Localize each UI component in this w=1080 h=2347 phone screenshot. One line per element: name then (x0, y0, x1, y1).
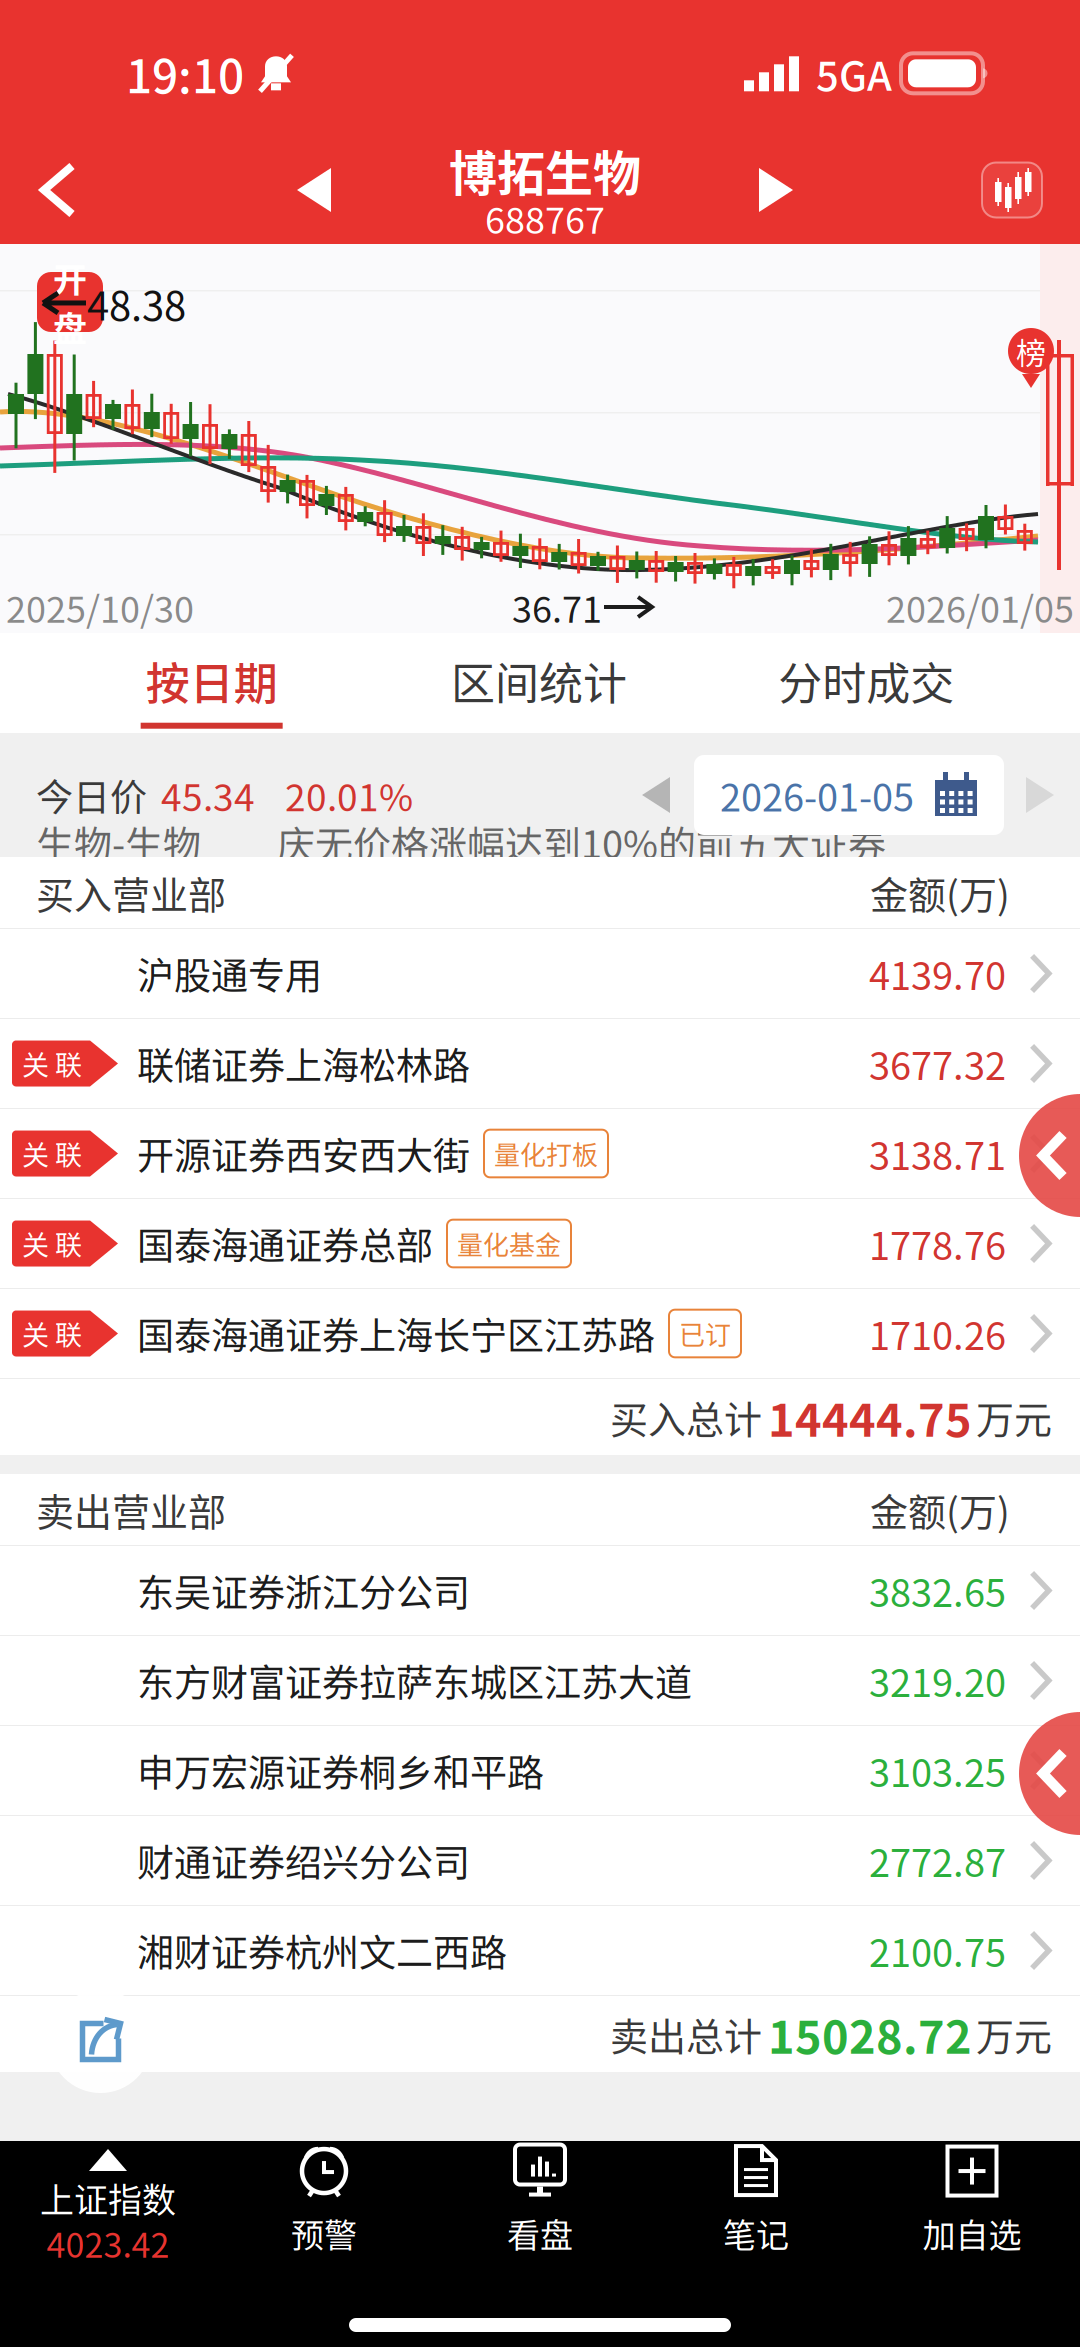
button[interactable]: 2026-01-05 (694, 755, 1004, 835)
staticText: 财通证券绍兴分公司 (137, 1834, 470, 1887)
staticText: 国泰海通证券上海长宁区江苏路 (137, 1307, 655, 1360)
staticText: 东吴证券浙江分公司 (137, 1564, 470, 1617)
button[interactable]: 东方财富证券拉萨东城区江苏大道 (0, 1636, 1080, 1726)
staticText: 今日价 (36, 768, 147, 822)
staticText: 3677.32 (869, 1036, 1006, 1091)
button[interactable]: 区间统计 (375, 633, 703, 733)
staticText: 万元 (976, 1389, 1052, 1444)
button[interactable]: 财通证券绍兴分公司 (0, 1816, 1080, 1906)
button[interactable]: 关 联 (0, 1019, 1080, 1109)
staticText: 买入营业部 (36, 865, 226, 920)
staticText: 笔记 (723, 2209, 789, 2257)
button[interactable]: 分时成交 (703, 633, 1030, 733)
staticText: 36.71 (512, 581, 602, 633)
button[interactable]: 关 联 (0, 1109, 1080, 1199)
button[interactable]: 湘财证券杭州文二西路 (0, 1906, 1080, 1996)
staticText: 沪股通专用 (137, 947, 322, 1000)
staticText: 开盘 (53, 253, 87, 351)
staticText: 加自选 (922, 2209, 1021, 2257)
staticText: 湘财证券杭州文二西路 (137, 1924, 507, 1977)
button[interactable]: Previous page (1019, 1094, 1080, 1217)
button[interactable]: 沪股通专用 (0, 929, 1080, 1019)
staticText: 1710.26 (869, 1306, 1006, 1361)
button[interactable]: 申万宏源证券桐乡和平路 (0, 1726, 1080, 1816)
button[interactable]: 关 联 (0, 1289, 1080, 1379)
staticText: 4023.42 (46, 2218, 169, 2268)
staticText: 金额(万) (870, 1482, 1010, 1537)
button[interactable]: Next stock (746, 160, 806, 220)
button[interactable]: Next day (1012, 767, 1068, 823)
button[interactable]: 笔记 (648, 2141, 864, 2261)
staticText: 3832.65 (869, 1563, 1006, 1618)
staticText: 48.38 (87, 274, 186, 332)
staticText: 生物-生物 庆无价格涨幅达到10%的前五大证券 (36, 814, 886, 869)
staticText: 已订 (679, 1315, 731, 1352)
staticText: 区间统计 (451, 649, 627, 713)
button[interactable]: 看盘 (432, 2141, 648, 2261)
staticText: 688767 (485, 192, 605, 244)
button[interactable]: Share (49, 1990, 152, 2093)
staticText: 万元 (976, 2006, 1052, 2061)
staticText: 关 联 (22, 1134, 82, 1173)
staticText: 3219.20 (869, 1653, 1006, 1708)
staticText: 预警 (291, 2209, 357, 2257)
staticText: 关 联 (22, 1044, 82, 1083)
staticText: 关 联 (22, 1314, 82, 1353)
button[interactable]: 预警 (216, 2141, 432, 2261)
staticText: 卖出总计 (610, 2006, 762, 2061)
staticText: 金额(万) (870, 865, 1010, 920)
staticText: 上证指数 (40, 2173, 176, 2223)
button[interactable]: 关 联 (0, 1199, 1080, 1289)
button[interactable]: 按日期 (48, 633, 375, 733)
button[interactable]: Previous day (628, 767, 684, 823)
staticText: 量化基金 (457, 1225, 561, 1262)
staticText: 榜 (1016, 329, 1046, 373)
staticText: 博拓生物 (449, 135, 641, 205)
staticText: 关 联 (22, 1224, 82, 1263)
staticText: 按日期 (146, 649, 278, 713)
staticText: 2772.87 (869, 1833, 1006, 1888)
staticText: 4139.70 (869, 946, 1006, 1001)
staticText: 20.01% (285, 768, 413, 822)
staticText: 45.34 (161, 768, 255, 822)
staticText: 2100.75 (869, 1923, 1006, 1978)
button[interactable]: Back (20, 152, 96, 228)
button[interactable]: 加自选 (864, 2141, 1080, 2261)
staticText: 2026/01/05 (886, 581, 1074, 633)
staticText: 3138.71 (869, 1126, 1006, 1181)
staticText: 量化打板 (494, 1135, 598, 1172)
staticText: 5GA (816, 44, 892, 102)
staticText: 15028.72 (768, 2001, 972, 2067)
button[interactable]: Previous page (1019, 1712, 1080, 1835)
staticText: 2025/10/30 (6, 581, 194, 633)
staticText: 分时成交 (778, 649, 954, 713)
staticText: 1778.76 (869, 1216, 1006, 1271)
staticText: 开源证券西安西大街 (137, 1127, 470, 1180)
staticText: 看盘 (507, 2209, 573, 2257)
staticText: 卖出营业部 (36, 1482, 226, 1537)
button[interactable]: 东吴证券浙江分公司 (0, 1546, 1080, 1636)
button[interactable]: 上证指数 (0, 2141, 216, 2261)
button[interactable]: Chart type (982, 162, 1042, 217)
staticText: 2026-01-05 (720, 767, 914, 822)
staticText: 买入总计 (610, 1389, 762, 1444)
staticText: 国泰海通证券总部 (137, 1217, 433, 1270)
staticText: 19:10 (126, 40, 244, 107)
staticText: 申万宏源证券桐乡和平路 (137, 1744, 544, 1797)
button[interactable]: Previous stock (284, 160, 344, 220)
staticText: 3103.25 (869, 1743, 1006, 1798)
staticText: 联储证券上海松林路 (137, 1037, 470, 1090)
staticText: 东方财富证券拉萨东城区江苏大道 (137, 1654, 692, 1707)
staticText: 14444.75 (768, 1384, 972, 1450)
